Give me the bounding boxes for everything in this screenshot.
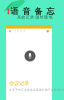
- staticText: 全部录音: [14, 30, 26, 33]
- staticText: 高效记录 随时随地: [17, 15, 52, 20]
- staticText: 今天下午三点在会议室进行的产品评审讨论: [9, 88, 64, 91]
- staticText: 语音备忘: [11, 6, 55, 16]
- staticText: 会议记录: [9, 80, 29, 87]
